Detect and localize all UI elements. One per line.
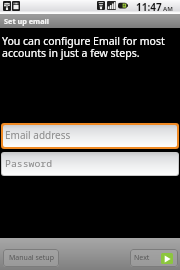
- button[interactable]: Password: [2, 153, 178, 175]
- button[interactable]: Email address: [3, 125, 177, 147]
- staticText: AM: [163, 5, 173, 13]
- staticText: 11:47: [136, 0, 162, 14]
- button[interactable]: Next: [130, 249, 178, 267]
- staticText: Password: [5, 157, 53, 170]
- staticText: Manual setup: [9, 253, 54, 263]
- staticText: Set up email: [4, 16, 49, 26]
- button[interactable]: Manual setup: [3, 249, 59, 267]
- staticText: Next: [134, 253, 150, 263]
- staticText: You can configure Email for most account…: [2, 34, 176, 60]
- staticText: Email address: [5, 128, 71, 142]
